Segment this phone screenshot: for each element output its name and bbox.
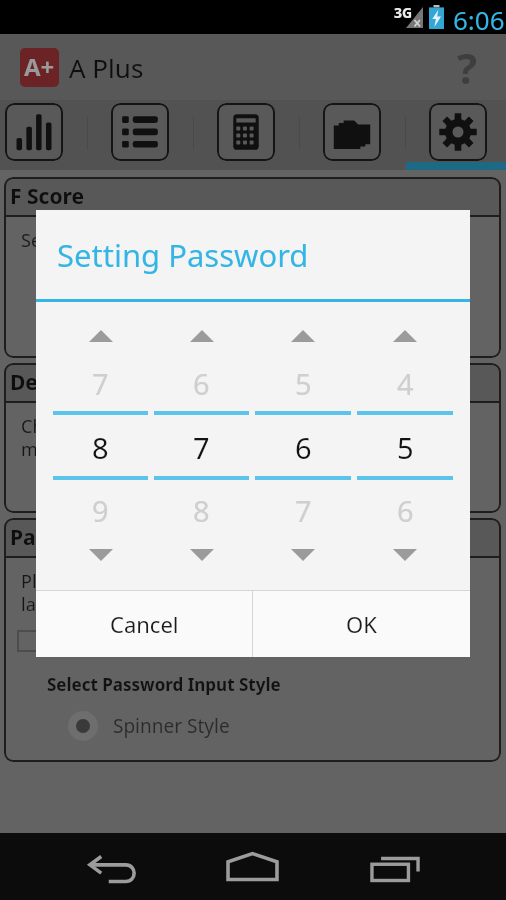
button[interactable]: Increment — [89, 330, 113, 342]
staticText: Setting Password — [57, 234, 309, 276]
staticText: 6 — [397, 491, 414, 530]
staticText: Spinner Style — [113, 713, 230, 739]
button[interactable]: Folders — [323, 103, 381, 161]
button[interactable]: Statistics — [0, 100, 87, 170]
button[interactable]: Settings — [405, 100, 506, 170]
staticText: Set your F score goal here for monitorin… — [21, 228, 369, 253]
button[interactable]: Decrement — [393, 549, 417, 561]
button[interactable]: Spinner Style — [68, 711, 230, 741]
staticText: 5 — [397, 428, 414, 467]
button[interactable]: List — [87, 100, 193, 170]
staticText: 7 — [295, 491, 312, 530]
button[interactable]: Decimal Places — [4, 363, 501, 513]
staticText: 6 — [193, 364, 210, 403]
staticText: Decimal Places — [10, 368, 166, 397]
button[interactable]: A Plus — [20, 48, 59, 87]
button[interactable]: Home — [224, 845, 282, 889]
button[interactable]: OK — [253, 591, 470, 657]
button[interactable]: Recent apps — [368, 847, 422, 887]
staticText: 8 — [193, 491, 210, 530]
button[interactable]: Cancel — [36, 591, 252, 657]
button[interactable]: Enable password — [17, 630, 51, 652]
staticText: 9 — [92, 491, 109, 530]
button[interactable]: Settings — [429, 103, 487, 161]
button[interactable]: Increment — [291, 330, 315, 342]
button[interactable]: Calculator — [217, 103, 275, 161]
button[interactable]: Decrement — [89, 549, 113, 561]
button[interactable]: List — [111, 103, 169, 161]
button[interactable]: Password — [4, 518, 501, 762]
staticText: 3G — [394, 3, 413, 22]
staticText: A Plus — [69, 50, 144, 85]
button[interactable]: Increment — [393, 330, 417, 342]
staticText: 6 — [295, 428, 312, 467]
button[interactable]: Calculator — [193, 100, 299, 170]
staticText: 8 — [92, 428, 109, 467]
button[interactable]: Decrement — [190, 549, 214, 561]
button[interactable]: F Score — [4, 177, 501, 358]
staticText: Please set a password for security to la… — [21, 569, 329, 616]
staticText: 4 — [397, 364, 414, 403]
button[interactable]: Help — [444, 39, 490, 85]
staticText: Cancel — [110, 609, 179, 639]
staticText: 7 — [92, 364, 109, 403]
staticText: Password — [10, 523, 111, 552]
button[interactable]: Statistics — [5, 103, 63, 161]
staticText: OK — [346, 609, 377, 639]
button[interactable]: Folders — [299, 100, 405, 170]
staticText: A+ — [24, 50, 55, 83]
button[interactable]: Decrement — [291, 549, 315, 561]
staticText: 7 — [193, 428, 210, 467]
staticText: F Score — [10, 182, 85, 211]
staticText: 6:06 — [453, 2, 505, 36]
staticText: Select Password Input Style — [47, 673, 281, 696]
staticText: Choose the number of decimals to show mo… — [21, 414, 362, 461]
staticText: ? — [457, 39, 478, 85]
staticText: 5 — [295, 364, 312, 403]
button[interactable]: Increment — [190, 330, 214, 342]
button[interactable]: Back — [86, 847, 138, 887]
